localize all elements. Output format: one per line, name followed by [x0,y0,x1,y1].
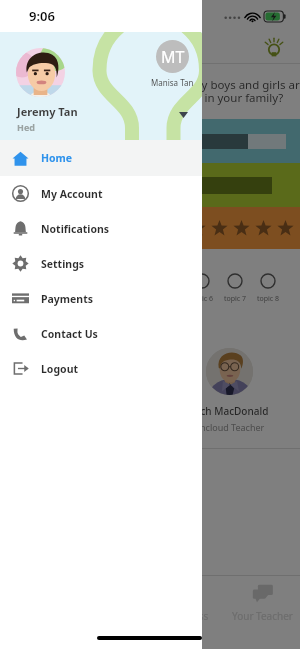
staticText: Settings [41,257,85,271]
staticText: Manisa Tan [151,77,194,88]
staticText: Home [41,151,73,165]
button[interactable]: topic 1 [22,273,52,304]
staticText: Logout [41,362,79,376]
button[interactable]: topic 8 [253,273,283,304]
staticText: Hed [17,121,35,133]
button[interactable]: Settings [0,246,202,281]
button[interactable]: topic 3 [88,273,118,304]
button[interactable]: topic 6 [187,273,217,304]
button[interactable]: Progress [150,576,225,629]
staticText: Jeremy Tan [17,104,78,119]
button[interactable] [0,163,300,207]
staticText: topic 6 [191,294,214,304]
staticText: Zach MacDonald [189,404,269,418]
staticText: How many boys and girls are there in you… [150,77,300,106]
staticText: MT [161,46,185,68]
staticText: topic 1 [26,294,49,304]
staticText: Lincloud Teacher [193,421,265,433]
button[interactable]: Payments [0,281,202,316]
button[interactable] [0,207,300,249]
staticText: topic 2 [59,294,82,304]
button[interactable] [0,119,300,163]
button[interactable]: Your Teacher [225,576,300,629]
staticText: My Account [41,187,103,201]
button[interactable]: topic 7 [220,273,250,304]
staticText: topic 7 [224,294,247,304]
staticText: topic 3 [92,294,115,304]
staticText: Notifications [41,222,110,236]
staticText: 9:06 [29,7,55,25]
staticText: Progress [167,609,209,623]
button[interactable]: Contact Us [0,316,202,351]
button[interactable]: Hint [264,38,284,58]
staticText: Your Teacher [232,609,293,623]
staticText: Payments [41,292,93,306]
button[interactable] [0,0,300,649]
staticText: topic 8 [257,294,280,304]
button[interactable]: Notifications [0,211,202,246]
button[interactable]: topic 2 [55,273,85,304]
button[interactable]: Home [0,140,202,176]
button[interactable]: Logout [0,351,202,386]
staticText: 9:06 [29,7,55,25]
staticText: Contact Us [41,327,98,341]
button[interactable]: Zach MacDonald [159,348,299,433]
button[interactable]: My Account [0,176,202,211]
